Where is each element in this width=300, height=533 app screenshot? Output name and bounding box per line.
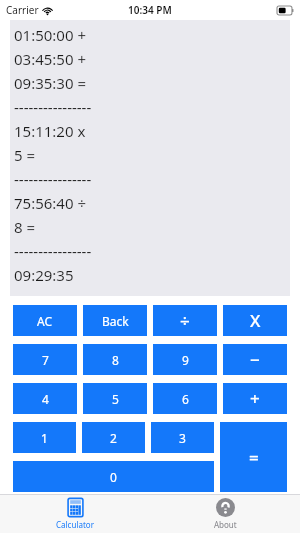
- button[interactable]: Back: [83, 305, 147, 336]
- button[interactable]: Calculator: [0, 495, 150, 533]
- button[interactable]: 2: [82, 422, 145, 453]
- button[interactable]: 1: [13, 422, 76, 453]
- button[interactable]: 9: [153, 344, 217, 375]
- staticText: Calculator: [56, 519, 94, 530]
- button[interactable]: 6: [153, 383, 217, 414]
- staticText: 9: [182, 352, 189, 368]
- button[interactable]: 4: [13, 383, 77, 414]
- staticText: X: [250, 309, 261, 332]
- staticText: 1: [41, 430, 48, 446]
- staticText: 5 =: [14, 145, 36, 165]
- staticText: 6: [182, 391, 189, 407]
- staticText: −: [250, 348, 260, 371]
- button[interactable]: =: [220, 422, 287, 492]
- button[interactable]: −: [223, 344, 287, 375]
- staticText: 5: [112, 391, 119, 407]
- staticText: =: [249, 446, 259, 469]
- staticText: 01:50:00 +: [14, 25, 87, 45]
- button[interactable]: 7: [13, 344, 77, 375]
- staticText: 15:11:20 x: [14, 121, 86, 141]
- other: About: [216, 498, 235, 517]
- staticText: 75:56:40 ÷: [14, 193, 87, 213]
- other: Calculator: [66, 498, 85, 517]
- button[interactable]: ÷: [153, 305, 217, 336]
- staticText: +: [250, 387, 260, 410]
- staticText: AC: [37, 313, 53, 329]
- staticText: 8 =: [14, 217, 36, 237]
- staticText: ----------------: [14, 241, 92, 261]
- button[interactable]: 5: [83, 383, 147, 414]
- staticText: Carrier: [6, 3, 39, 17]
- staticText: 8: [112, 352, 119, 368]
- button[interactable]: 3: [151, 422, 214, 453]
- staticText: 09:35:30 =: [14, 73, 87, 93]
- staticText: ÷: [180, 309, 190, 332]
- staticText: ----------------: [14, 169, 92, 189]
- staticText: 03:45:50 +: [14, 49, 87, 69]
- staticText: 4: [42, 391, 49, 407]
- staticText: 09:29:35: [14, 265, 74, 285]
- button[interactable]: +: [223, 383, 287, 414]
- button[interactable]: About: [150, 495, 300, 533]
- button[interactable]: 0: [13, 461, 214, 492]
- staticText: 7: [42, 352, 49, 368]
- staticText: About: [214, 519, 237, 530]
- staticText: 3: [179, 430, 186, 446]
- staticText: 10:34 PM: [128, 3, 172, 17]
- staticText: 0: [110, 469, 117, 485]
- button[interactable]: X: [223, 305, 287, 336]
- button[interactable]: 8: [83, 344, 147, 375]
- staticText: Back: [102, 313, 129, 329]
- staticText: ----------------: [14, 97, 92, 117]
- staticText: 2: [110, 430, 117, 446]
- button[interactable]: AC: [13, 305, 77, 336]
